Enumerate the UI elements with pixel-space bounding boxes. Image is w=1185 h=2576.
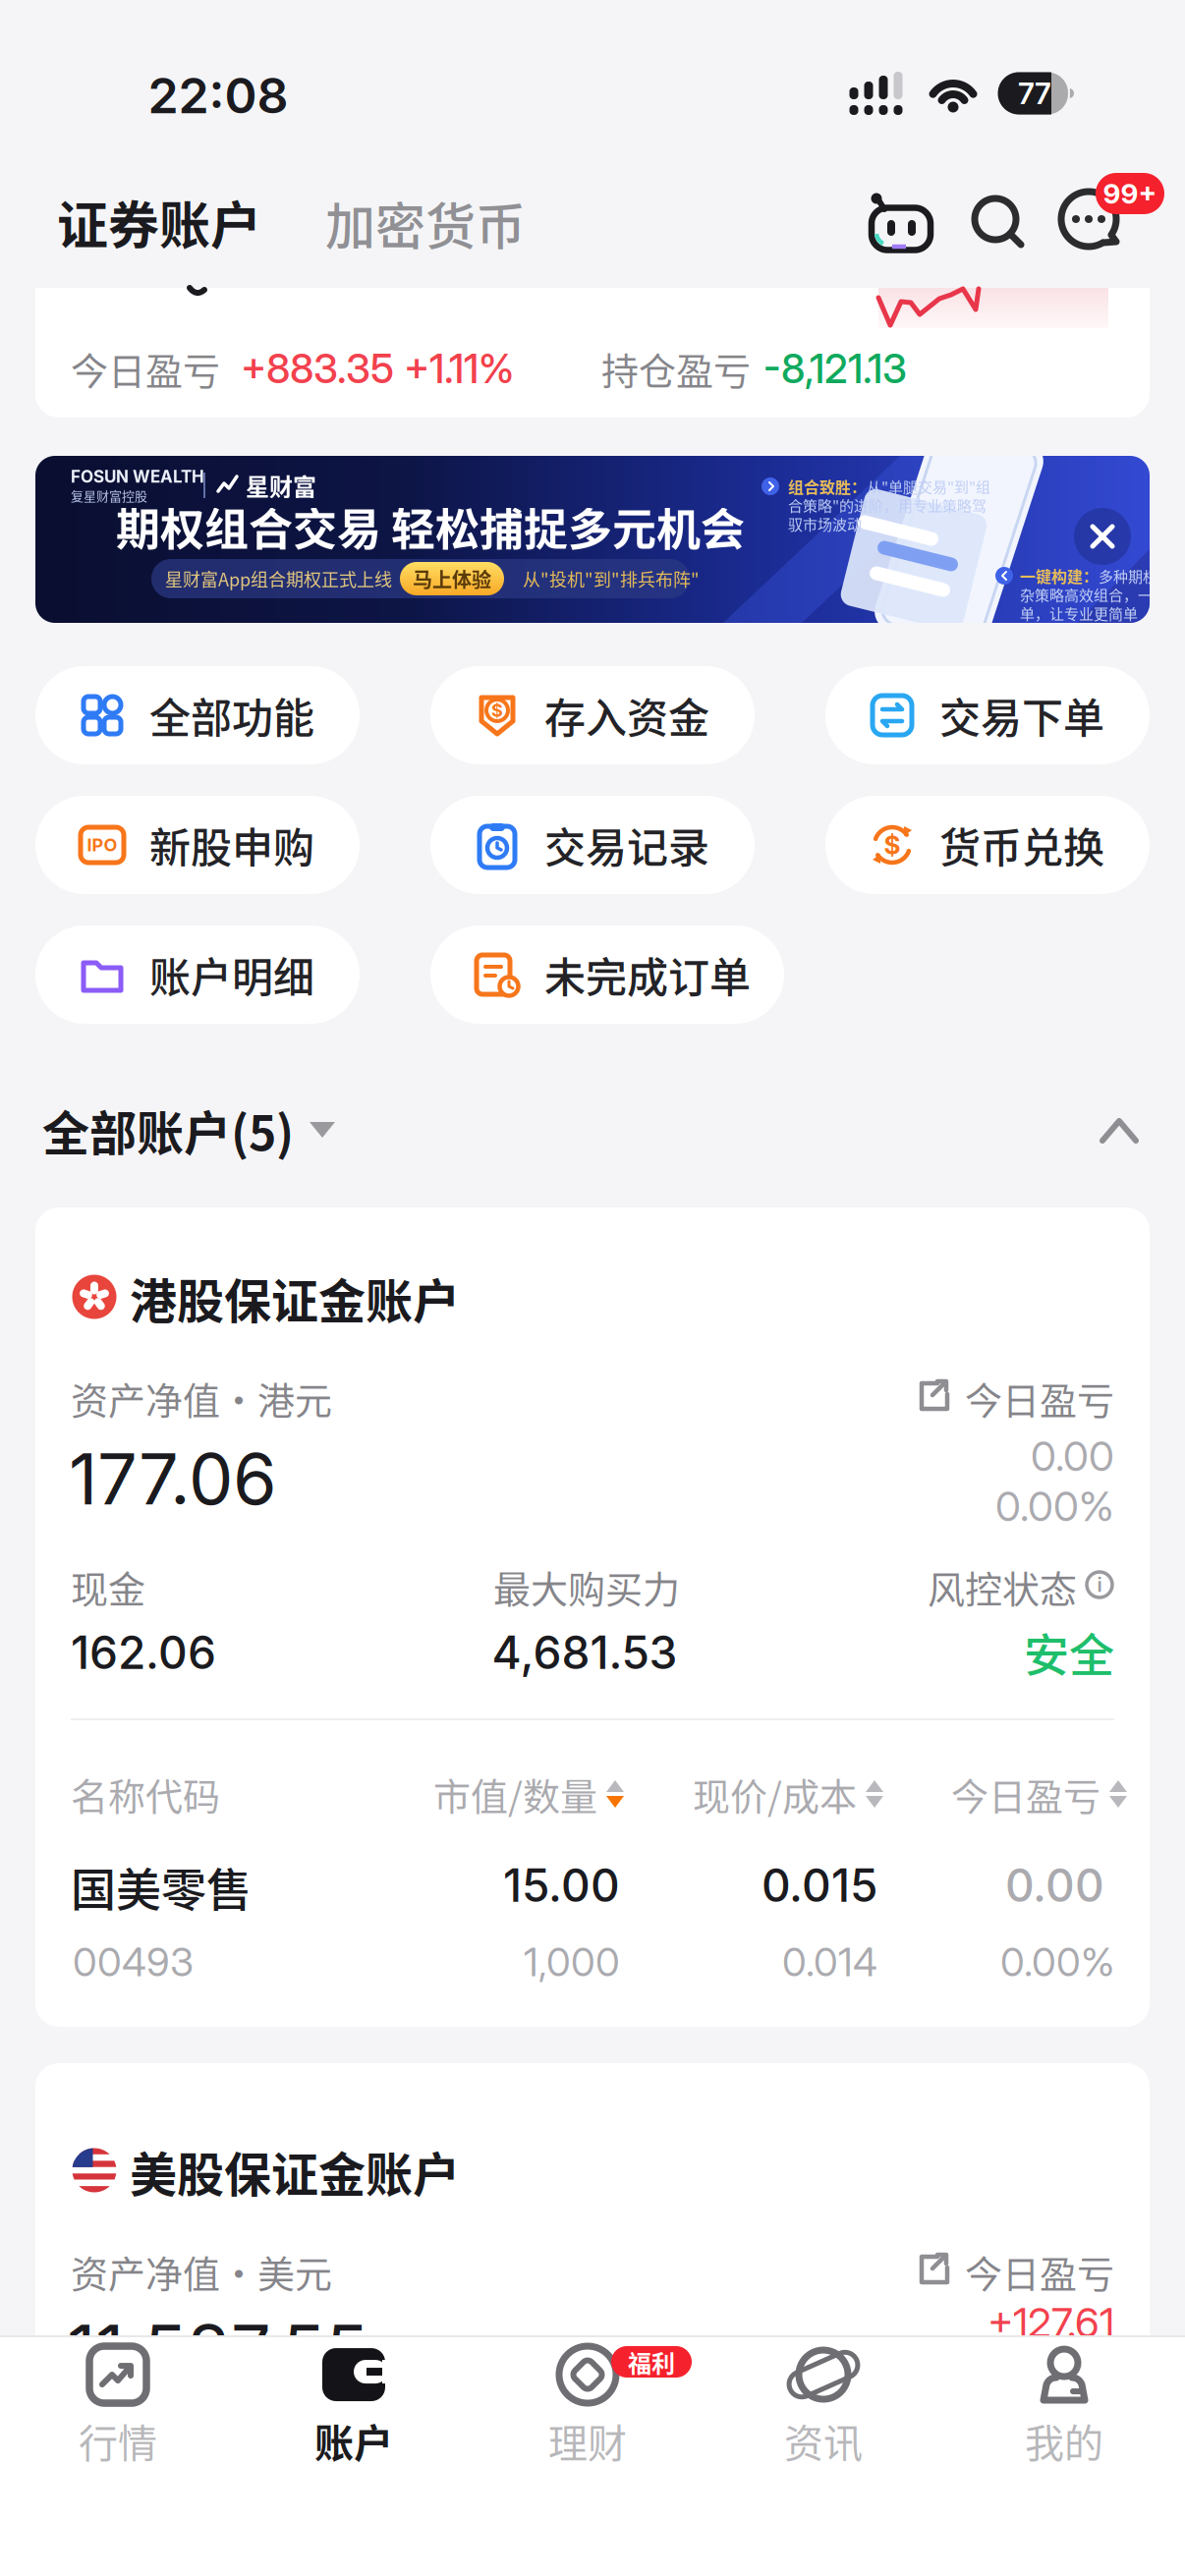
- staticText: 市值/数量: [433, 1767, 597, 1821]
- button[interactable]: 未完成订单: [430, 925, 784, 1024]
- staticText: 我的: [1025, 2412, 1103, 2469]
- button[interactable]: 我的: [976, 2343, 1153, 2471]
- button[interactable]: 全部账户(5): [42, 1096, 335, 1164]
- staticText: 账户明细: [149, 945, 314, 1004]
- staticText: 单，让专业更简单: [1020, 602, 1138, 624]
- staticText: 复星财富控股: [71, 486, 147, 504]
- staticText: 今日盈亏: [71, 341, 220, 395]
- button[interactable]: $: [825, 796, 1150, 894]
- button[interactable]: 美股保证金账户: [35, 2063, 1150, 2574]
- staticText: 风控状态: [928, 1560, 1077, 1614]
- staticText: 资讯: [784, 2412, 863, 2469]
- staticText: 今日盈亏: [965, 1371, 1114, 1425]
- staticText: 星财富App组合期权正式上线: [165, 566, 392, 592]
- staticText: 1,000: [524, 1938, 620, 1986]
- button[interactable]: 搜索: [971, 195, 1028, 252]
- staticText: 港股保证金账户: [130, 1264, 460, 1332]
- staticText: -8,121.13: [763, 344, 907, 393]
- staticText: 新股申购: [149, 815, 314, 875]
- staticText: 名称代码: [71, 1767, 220, 1821]
- staticText: 现金: [71, 1560, 145, 1614]
- staticText: 星财富: [246, 468, 316, 502]
- button[interactable]: 港股保证金账户: [35, 1207, 1150, 2027]
- staticText: 合策略"的进阶，用专业策略驾: [788, 494, 987, 516]
- staticText: 0.014: [782, 1938, 877, 1986]
- button[interactable]: 账户: [265, 2343, 442, 2471]
- button[interactable]: 全部功能: [35, 666, 360, 764]
- staticText: 证券账户: [57, 185, 261, 259]
- button[interactable]: AI 助手: [867, 194, 935, 254]
- button[interactable]: FOSUN WEALTH: [35, 456, 1150, 623]
- staticText: 组合致胜：: [788, 475, 867, 498]
- button[interactable]: 资讯: [735, 2343, 912, 2471]
- button[interactable]: 关闭: [1074, 508, 1131, 565]
- staticText: 全部功能: [149, 685, 314, 745]
- staticText: 马上体验: [413, 564, 491, 593]
- button[interactable]: 分享: [914, 1378, 951, 1414]
- staticText: 77: [1018, 76, 1051, 111]
- button[interactable]: 马上体验: [400, 562, 504, 595]
- staticText: 最大购买力: [493, 1560, 680, 1614]
- staticText: 从"单腿交易"到"组: [867, 476, 990, 497]
- staticText: 0.00%: [995, 1481, 1114, 1531]
- staticText: 162.06: [71, 1625, 216, 1680]
- staticText: 美股保证金账户: [130, 2137, 460, 2205]
- staticText: 从"投机"到"排兵布阵": [523, 566, 700, 592]
- staticText: 安全: [1024, 1619, 1114, 1684]
- staticText: 行情: [79, 2412, 157, 2469]
- button[interactable]: 消息: [1057, 173, 1165, 255]
- staticText: 今日盈亏: [951, 1767, 1100, 1821]
- staticText: 4,681.53: [492, 1625, 677, 1680]
- staticText: 0.00: [1031, 1431, 1114, 1481]
- staticText: 0.015: [762, 1858, 877, 1913]
- button[interactable]: 分享: [914, 2252, 951, 2287]
- staticText: 0.00%: [1000, 1938, 1114, 1986]
- button[interactable]: 交易记录: [430, 796, 755, 894]
- staticText: 11,587.55: [67, 2307, 368, 2393]
- button[interactable]: IPO: [35, 796, 360, 894]
- staticText: +127.61: [987, 2298, 1114, 2347]
- staticText: $: [884, 829, 901, 860]
- staticText: 多种期权类型，复: [1099, 565, 1185, 586]
- staticText: i: [1097, 1573, 1102, 1597]
- button[interactable]: 收起: [1099, 1115, 1140, 1147]
- staticText: IPO: [87, 834, 117, 856]
- staticText: 资产净值·美元: [71, 2244, 332, 2298]
- staticText: FOSUN WEALTH: [71, 466, 204, 487]
- staticText: 15.00: [503, 1858, 620, 1913]
- staticText: 今日盈亏: [965, 2244, 1114, 2298]
- staticText: 一键构建：: [1020, 564, 1099, 587]
- staticText: 账户: [314, 2412, 393, 2469]
- staticText: 全部账户(5): [42, 1096, 294, 1164]
- button[interactable]: 加密货币: [325, 187, 526, 259]
- staticText: 存入资金: [544, 685, 709, 745]
- staticText: 理财: [548, 2412, 627, 2469]
- staticText: 0.00: [1005, 1858, 1104, 1913]
- staticText: 交易记录: [544, 815, 709, 875]
- staticText: 22:08: [148, 66, 288, 125]
- staticText: 加密货币: [325, 187, 526, 259]
- staticText: 99+: [1103, 177, 1157, 210]
- staticText: 持仓盈亏: [601, 341, 751, 395]
- button[interactable]: 交易下单: [825, 666, 1150, 764]
- button[interactable]: $: [430, 666, 755, 764]
- button[interactable]: 理财: [499, 2343, 676, 2471]
- staticText: 货币兑换: [939, 815, 1104, 875]
- staticText: 00493: [73, 1938, 194, 1986]
- staticText: $: [491, 700, 503, 721]
- button[interactable]: 账户明细: [35, 925, 360, 1024]
- button[interactable]: 证券账户: [57, 185, 261, 259]
- staticText: 杂策略高效组合，一键添加下: [1020, 584, 1185, 605]
- staticText: 福利: [628, 2345, 675, 2379]
- staticText: 未完成订单: [544, 945, 751, 1004]
- staticText: 现价/成本: [693, 1767, 857, 1821]
- staticText: 期权组合交易 轻松捕捉多元机会: [116, 495, 745, 559]
- staticText: 交易下单: [939, 685, 1104, 745]
- button[interactable]: 行情: [29, 2343, 206, 2471]
- staticText: 资产净值·港元: [71, 1371, 332, 1425]
- staticText: +883.35 +1.11%: [241, 344, 514, 393]
- staticText: 国美零售: [71, 1854, 252, 1919]
- staticText: 驭市场波动: [788, 513, 862, 534]
- staticText: 177.06: [69, 1436, 277, 1521]
